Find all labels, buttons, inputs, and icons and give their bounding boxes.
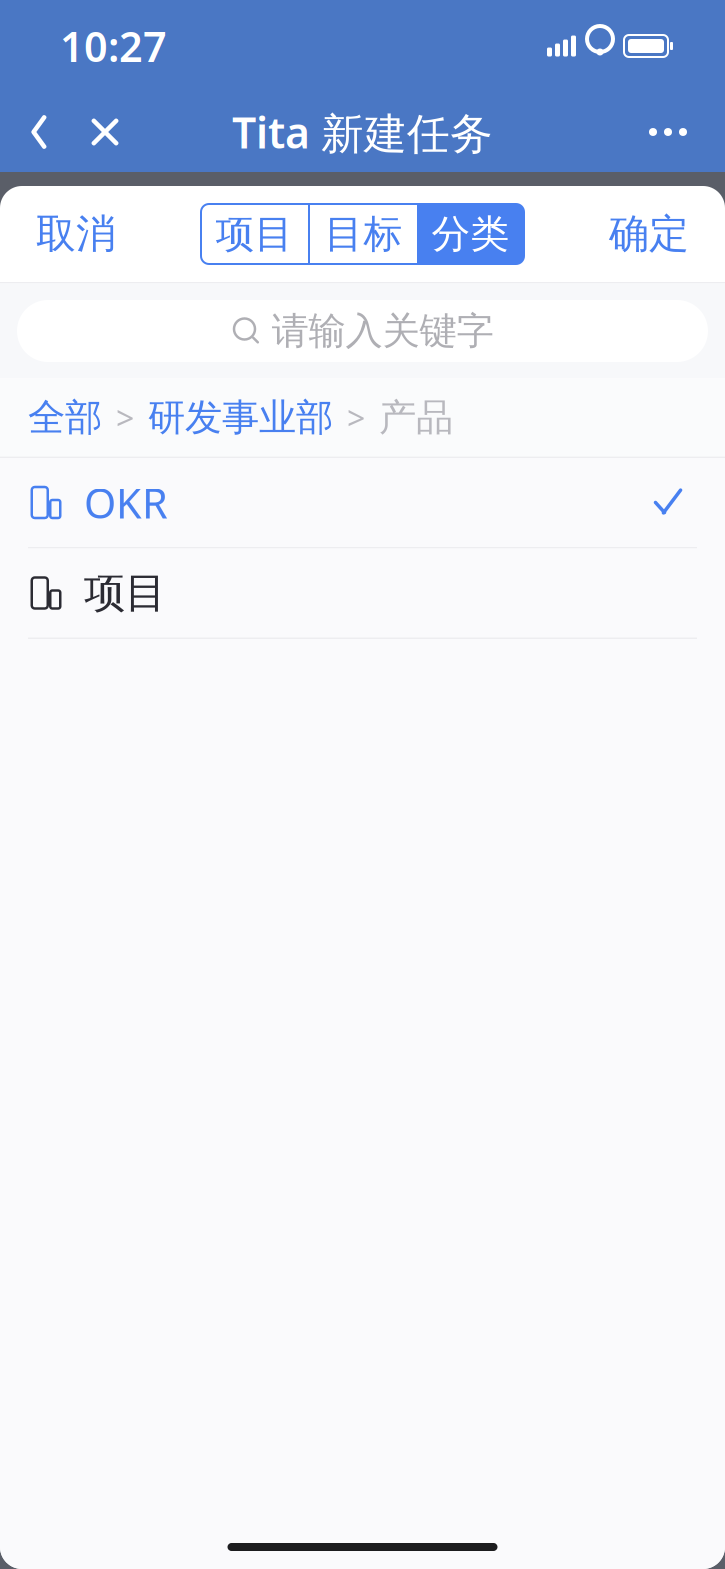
button[interactable]: Search bbox=[17, 300, 708, 362]
staticText: 取消 bbox=[36, 209, 116, 258]
button[interactable]: 项目 bbox=[0, 548, 725, 637]
staticText: 确定 bbox=[609, 209, 689, 258]
button[interactable]: 项目 bbox=[201, 204, 308, 264]
staticText: > bbox=[108, 396, 142, 439]
button[interactable]: Back bbox=[6, 99, 72, 165]
staticText: Tita 新建任务 bbox=[232, 104, 493, 160]
button[interactable]: 全部 bbox=[28, 395, 102, 440]
button[interactable]: OKR bbox=[0, 458, 725, 547]
staticText: 产品 bbox=[379, 395, 453, 440]
button[interactable]: 确定 bbox=[573, 187, 725, 280]
staticText: 研发事业部 bbox=[148, 395, 333, 440]
button[interactable]: More bbox=[633, 99, 703, 165]
staticText: 项目 bbox=[215, 210, 293, 258]
button[interactable]: 分类 bbox=[417, 204, 524, 264]
button[interactable]: 研发事业部 bbox=[148, 395, 333, 440]
staticText: 分类 bbox=[431, 210, 509, 258]
staticText: 目标 bbox=[324, 210, 402, 258]
button[interactable]: Close bbox=[72, 99, 138, 165]
staticText: 全部 bbox=[28, 395, 102, 440]
staticText: 项目 bbox=[84, 568, 166, 618]
staticText: 10:27 bbox=[60, 19, 167, 73]
button[interactable]: 取消 bbox=[0, 187, 152, 280]
staticText: > bbox=[339, 396, 373, 439]
staticText: 请输入关键字 bbox=[271, 308, 493, 354]
staticText: OKR bbox=[84, 475, 168, 530]
button[interactable]: 目标 bbox=[310, 204, 417, 264]
